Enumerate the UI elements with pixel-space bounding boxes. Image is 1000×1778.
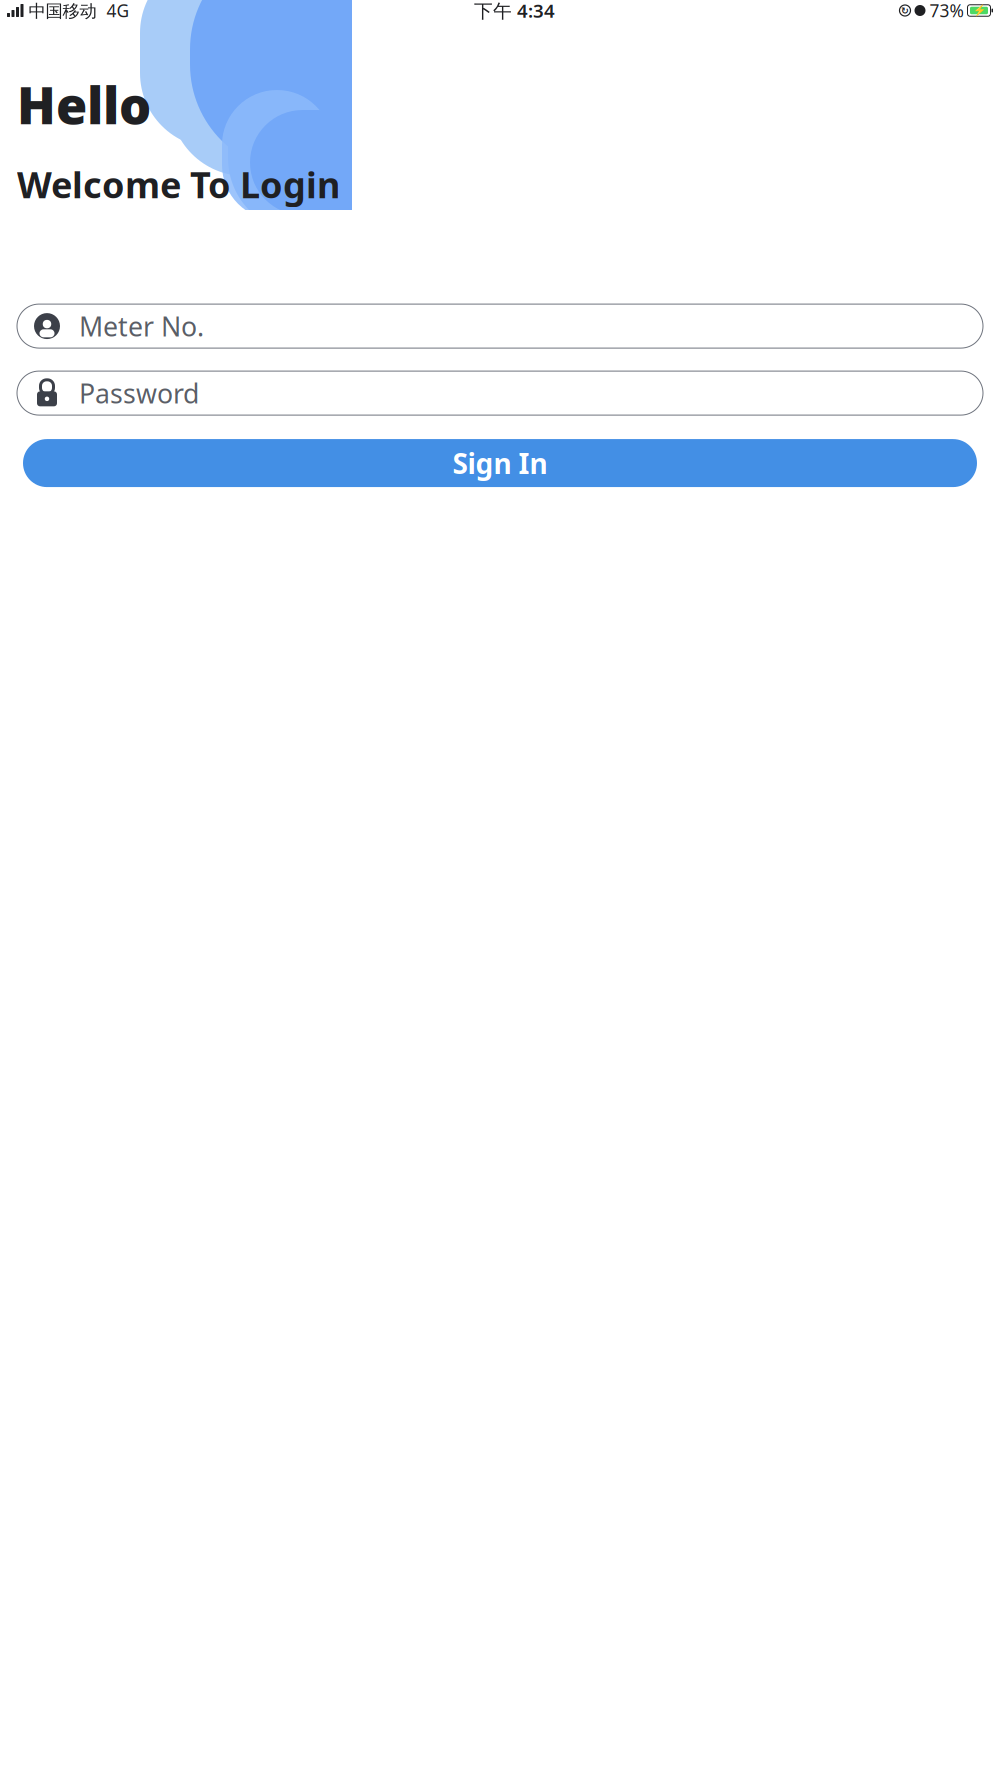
button[interactable]: Password [17,371,983,415]
staticText: Sign In [452,444,547,482]
staticText: 下午 4:34 [474,0,555,23]
staticText: Hello [17,71,151,138]
staticText: ↻ [901,5,909,16]
staticText: ⚡ [972,4,985,17]
staticText: Meter No. [79,308,204,344]
button[interactable]: Meter No. [17,304,983,348]
staticText: Password [79,375,199,411]
staticText: 73% [929,0,963,22]
staticText: Welcome To Login [17,160,340,208]
button[interactable]: Sign In [23,439,977,487]
staticText: 中国移动 4G [23,0,129,22]
